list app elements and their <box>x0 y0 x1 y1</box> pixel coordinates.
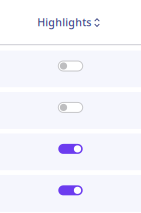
button[interactable]: Highlights <box>0 0 141 44</box>
staticText: Highlights <box>37 15 91 29</box>
button[interactable]: Highlight 3, on <box>0 133 141 170</box>
button[interactable]: Highlight 2, off <box>0 92 141 129</box>
button[interactable]: Highlight 1, off <box>0 51 141 87</box>
button[interactable]: Highlight 4, on <box>0 175 141 212</box>
